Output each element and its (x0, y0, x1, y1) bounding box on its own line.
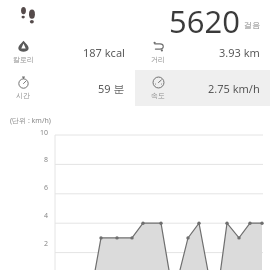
staticText: 시간 (16, 91, 30, 100)
button[interactable]: Steps (0, 0, 270, 34)
button[interactable]: 시간 (0, 70, 135, 106)
staticText: 칼로리 (13, 55, 34, 64)
staticText: 187 kcal (83, 45, 125, 60)
staticText: 59 분 (98, 81, 125, 96)
button[interactable]: 속도 (135, 70, 270, 106)
staticText: 속도 (151, 91, 165, 100)
staticText: 4 (0, 211, 48, 221)
staticText: 2.75 km/h (208, 81, 260, 96)
staticText: 5620 (169, 0, 240, 34)
button[interactable]: 칼로리 (0, 34, 135, 70)
staticText: 3.93 km (219, 45, 260, 60)
staticText: 6 (0, 183, 48, 193)
staticText: 10 (0, 128, 48, 138)
other: Steps (18, 6, 40, 28)
staticText: 거리 (151, 55, 165, 64)
staticText: (단위 : km/h) (10, 116, 51, 126)
staticText: 8 (0, 155, 48, 165)
staticText: 걸음 (244, 20, 260, 30)
button[interactable]: 거리 (135, 34, 270, 70)
staticText: 2 (0, 239, 48, 249)
